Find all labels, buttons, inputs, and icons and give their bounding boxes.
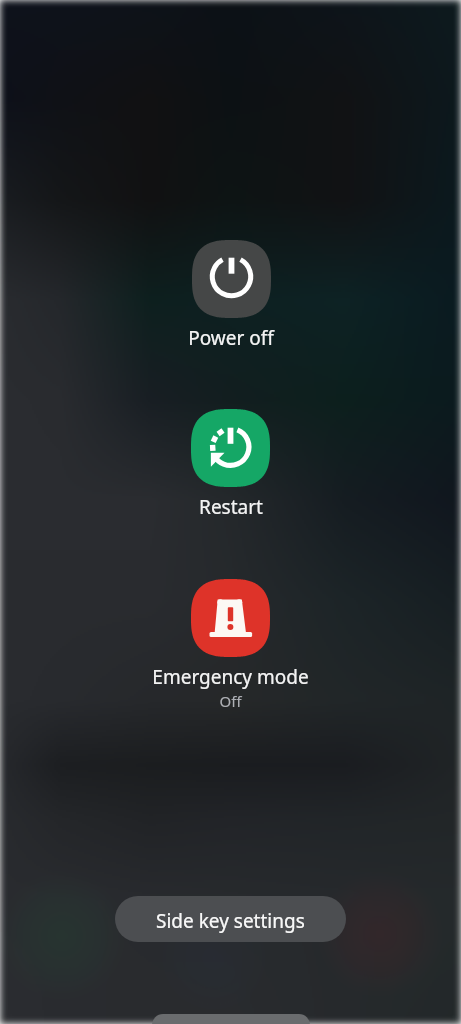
staticText: Side key settings — [156, 908, 305, 934]
button[interactable]: Side key settings — [115, 896, 346, 942]
staticText: Off — [219, 691, 242, 711]
button[interactable]: Power off — [188, 240, 274, 351]
staticText: Emergency mode — [152, 664, 309, 690]
button[interactable]: Restart — [191, 409, 270, 520]
staticText: Restart — [199, 494, 263, 520]
button[interactable]: Emergency mode — [152, 579, 309, 711]
staticText: Power off — [188, 325, 274, 351]
